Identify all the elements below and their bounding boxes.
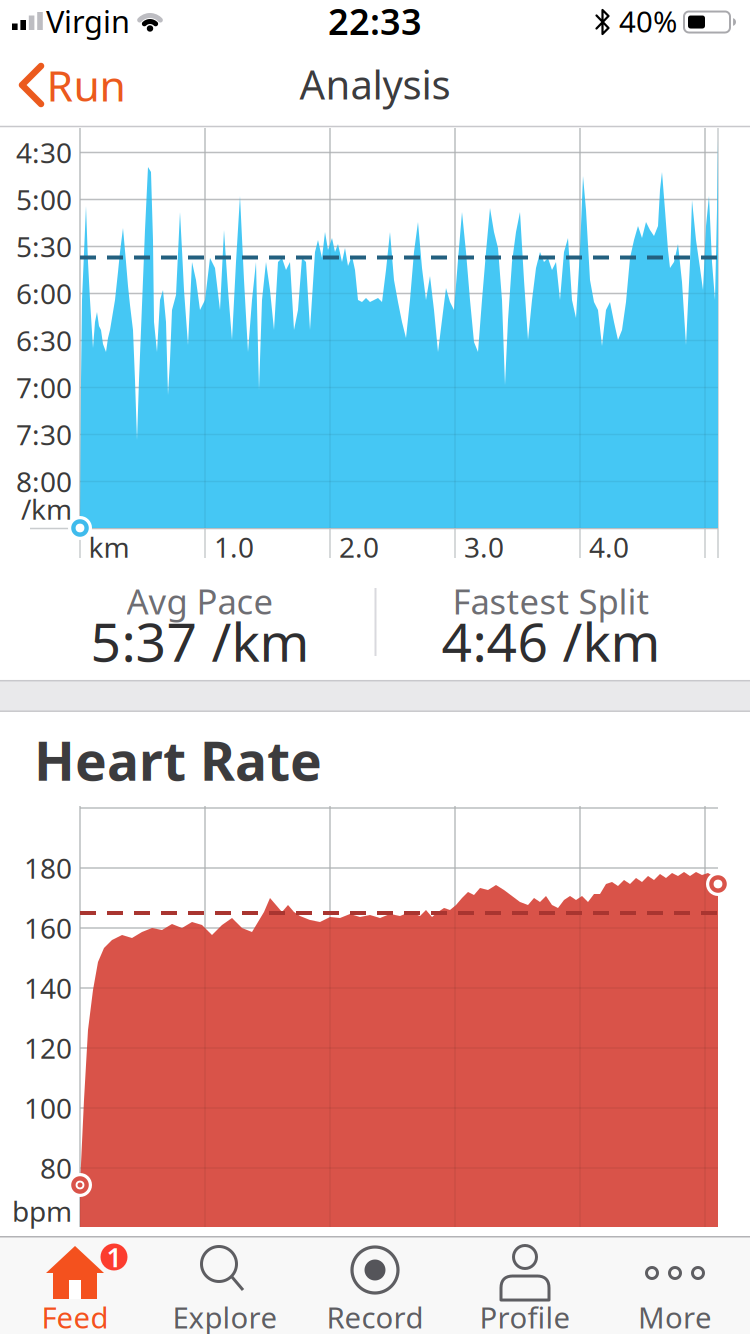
button[interactable]: Explore — [150, 1236, 300, 1332]
staticText: 100 — [24, 1089, 72, 1127]
staticText: 6:30 — [16, 322, 72, 359]
button[interactable]: Back to Run — [0, 48, 120, 108]
staticText: Record — [326, 1297, 423, 1334]
staticText: 80 — [40, 1149, 72, 1187]
staticText: 7:00 — [16, 369, 72, 406]
staticText: km — [88, 528, 129, 566]
staticText: 5:00 — [16, 181, 72, 218]
button[interactable]: More — [600, 1236, 750, 1332]
staticText: Fastest Split — [452, 578, 649, 624]
staticText: Profile — [479, 1297, 570, 1334]
staticText: 4:46 /km — [441, 606, 660, 676]
staticText: More — [638, 1297, 712, 1334]
staticText: 2.0 — [339, 528, 379, 566]
staticText: 22:33 — [328, 0, 422, 45]
staticText: Virgin — [46, 1, 130, 41]
staticText: 160 — [24, 909, 72, 947]
staticText: 5:30 — [16, 228, 72, 265]
button[interactable]: 1 — [0, 1236, 150, 1332]
staticText: 180 — [24, 849, 72, 887]
staticText: Run — [46, 57, 125, 113]
staticText: Explore — [172, 1297, 277, 1334]
staticText: 4.0 — [589, 528, 629, 566]
staticText: 7:30 — [16, 416, 72, 453]
staticText: 4:30 — [16, 134, 72, 171]
staticText: Analysis — [299, 57, 450, 110]
staticText: 6:00 — [16, 275, 72, 312]
staticText: Heart Rate — [34, 725, 322, 795]
staticText: 1.0 — [214, 528, 254, 566]
staticText: bpm — [12, 1192, 72, 1230]
staticText: 1 — [106, 1239, 121, 1275]
button[interactable]: Profile — [450, 1236, 600, 1332]
staticText: 40% — [619, 1, 677, 40]
button[interactable]: Record — [300, 1236, 450, 1332]
staticText: 140 — [24, 969, 72, 1007]
staticText: 5:37 /km — [90, 606, 309, 676]
staticText: 8:00 — [16, 463, 72, 500]
staticText: 120 — [24, 1029, 72, 1067]
staticText: Avg Pace — [126, 578, 273, 624]
staticText: Feed — [41, 1297, 108, 1334]
staticText: 3.0 — [464, 528, 504, 566]
staticText: /km — [21, 490, 72, 528]
